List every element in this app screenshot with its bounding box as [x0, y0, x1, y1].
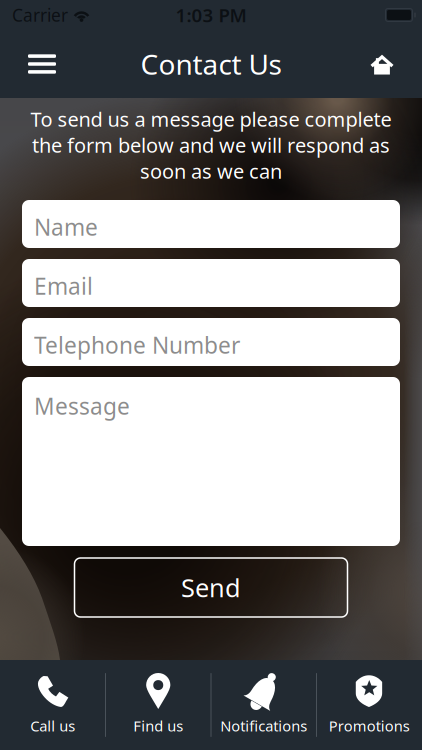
button[interactable]: Home	[354, 37, 410, 91]
button[interactable]: Send	[74, 558, 347, 617]
staticText: To send us a message please complete	[30, 106, 391, 132]
staticText: Carrier	[12, 3, 68, 26]
staticText: Name	[34, 212, 98, 242]
staticText: Call us	[30, 716, 75, 735]
button[interactable]: Email	[22, 259, 400, 307]
staticText: Promotions	[329, 716, 410, 735]
button[interactable]: Notifications	[211, 660, 316, 750]
button[interactable]: Telephone Number	[22, 318, 400, 366]
staticText: Notifications	[220, 716, 307, 735]
staticText: 1:03 PM	[175, 3, 246, 27]
staticText: soon as we can	[140, 158, 282, 184]
staticText: Contact Us	[140, 45, 281, 83]
staticText: the form below and we will respond as	[32, 132, 390, 158]
staticText: Send	[181, 571, 241, 604]
staticText: Find us	[133, 716, 183, 735]
staticText: Message	[34, 391, 130, 421]
staticText: Email	[34, 271, 93, 301]
button[interactable]: Name	[22, 200, 400, 248]
button[interactable]: Find us	[105, 660, 211, 750]
button[interactable]: Message	[22, 377, 400, 546]
button[interactable]: Promotions	[316, 660, 422, 750]
button[interactable]: Call us	[0, 660, 105, 750]
button[interactable]: Menu	[14, 37, 70, 91]
staticText: Telephone Number	[34, 330, 240, 360]
